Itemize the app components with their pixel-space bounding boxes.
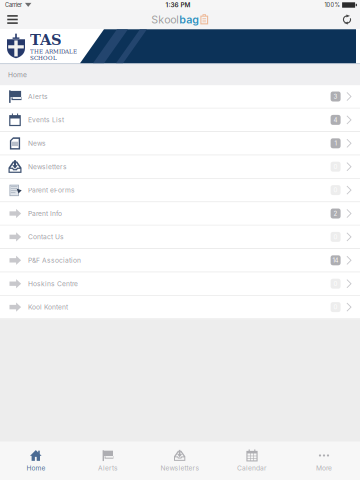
button[interactable]: P&F Association <box>0 249 360 272</box>
staticText: 14 <box>333 257 339 264</box>
staticText: Hoskins Centre <box>28 280 78 288</box>
button[interactable]: Home <box>0 441 72 480</box>
staticText: Parent Info <box>28 209 62 218</box>
button[interactable]: Refresh <box>334 10 360 29</box>
button[interactable]: Kool Kontent <box>0 296 360 319</box>
staticText: P&F Association <box>28 256 81 264</box>
staticText: 0 <box>334 303 338 311</box>
staticText: Parent eForms <box>28 186 75 194</box>
button[interactable]: Alerts <box>0 85 360 109</box>
staticText: Contact Us <box>28 233 64 241</box>
button[interactable]: Calendar <box>216 441 288 480</box>
staticText: 0 <box>334 280 338 287</box>
staticText: Alerts <box>98 464 118 472</box>
staticText: News <box>28 139 46 147</box>
staticText: Carrier <box>5 2 22 8</box>
staticText: bag <box>179 13 199 26</box>
staticText: THE ARMIDALE <box>30 48 77 55</box>
staticText: Home <box>8 71 27 79</box>
button[interactable]: Hoskins Centre <box>0 272 360 296</box>
staticText: Events List <box>28 116 64 124</box>
staticText: 2 <box>334 210 338 217</box>
staticText: SCHOOL <box>30 55 57 61</box>
staticText: 3 <box>334 93 338 100</box>
button[interactable]: Parent eForms <box>0 179 360 202</box>
staticText: TAS <box>30 31 62 48</box>
staticText: Newsletters <box>160 464 199 472</box>
staticText: 100% <box>324 2 339 8</box>
staticText: 0 <box>334 163 338 170</box>
button[interactable]: Events List <box>0 109 360 132</box>
staticText: 0 <box>334 186 338 194</box>
button[interactable]: Parent Info <box>0 202 360 226</box>
button[interactable]: Alerts <box>72 441 144 480</box>
staticText: Alerts <box>28 92 48 101</box>
button[interactable]: More <box>288 441 360 480</box>
button[interactable]: Newsletters <box>144 441 216 480</box>
staticText: 0 <box>334 233 338 241</box>
staticText: More <box>316 464 332 472</box>
button[interactable]: Menu <box>0 10 25 29</box>
staticText: 1:36 PM <box>165 1 190 9</box>
button[interactable]: Newsletters <box>0 155 360 179</box>
button[interactable]: News <box>0 132 360 155</box>
staticText: Home <box>26 464 45 472</box>
staticText: 1 <box>335 140 337 147</box>
staticText: Newsletters <box>28 163 67 171</box>
staticText: Skool <box>151 13 179 26</box>
staticText: 4 <box>334 116 338 124</box>
button[interactable]: Contact Us <box>0 226 360 249</box>
staticText: Calendar <box>237 464 267 472</box>
staticText: Kool Kontent <box>28 303 68 311</box>
